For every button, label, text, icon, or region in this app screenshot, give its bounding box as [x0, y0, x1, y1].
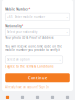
staticText: ⌄	[59, 58, 61, 61]
staticText: *	[29, 8, 30, 11]
staticText: Select your nationality	[7, 30, 37, 34]
staticText: ⌄	[66, 15, 68, 18]
button[interactable]: Select an option	[5, 56, 70, 63]
button[interactable]: Profile	[60, 92, 75, 100]
staticText: *	[22, 24, 23, 28]
staticText: Continue	[28, 75, 47, 80]
staticText: Nationality	[5, 24, 21, 28]
button[interactable]: Cards	[30, 92, 45, 100]
staticText: I agree to the Terms & Conditions	[5, 65, 53, 68]
staticText: Your photo ID & Proof of Address	[5, 36, 53, 39]
staticText: You will receive a one-time code on the …	[5, 45, 62, 52]
staticText: Mobile Number	[5, 8, 28, 11]
button[interactable]: +65 Enter mobile number	[5, 13, 70, 21]
button[interactable]: Continue	[5, 73, 70, 82]
button[interactable]: Search	[15, 92, 30, 100]
button[interactable]: Activity	[45, 92, 60, 100]
staticText: Already have an account? Sign In	[5, 85, 49, 89]
button[interactable]: Select your nationality	[5, 28, 70, 36]
button[interactable]: Home	[0, 92, 15, 100]
staticText: ⌄	[66, 30, 68, 33]
button[interactable]: Already have an account? Sign In	[5, 85, 49, 89]
staticText: +65 Enter mobile number	[7, 15, 45, 19]
staticText: Select an option	[7, 58, 30, 61]
